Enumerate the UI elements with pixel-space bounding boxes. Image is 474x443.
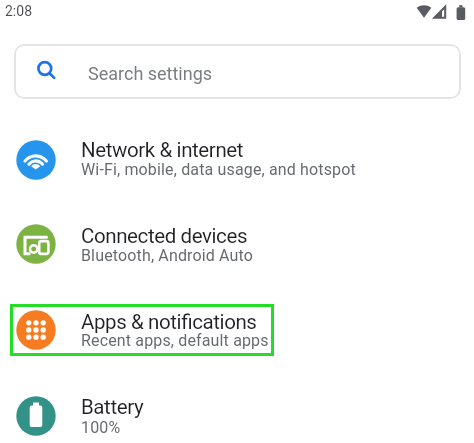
staticText: Apps & notifications	[81, 310, 257, 334]
staticText: Search settings	[88, 63, 213, 84]
staticText: Recent apps, default apps	[81, 331, 269, 350]
staticText: Battery	[81, 395, 144, 419]
button[interactable]: Connected devices	[0, 201, 474, 287]
staticText: 100%	[81, 418, 121, 437]
button[interactable]: Apps & notifications	[0, 287, 474, 373]
button[interactable]: Battery	[0, 373, 474, 443]
staticText: Wi-Fi, mobile, data usage, and hotspot	[81, 160, 356, 179]
staticText: 2:08	[5, 3, 32, 19]
staticText: Network & internet	[81, 138, 244, 162]
button[interactable]: Network & internet	[0, 117, 474, 203]
staticText: Connected devices	[81, 224, 248, 248]
button[interactable]: Search settings	[14, 44, 461, 99]
staticText: Bluetooth, Android Auto	[81, 246, 254, 265]
